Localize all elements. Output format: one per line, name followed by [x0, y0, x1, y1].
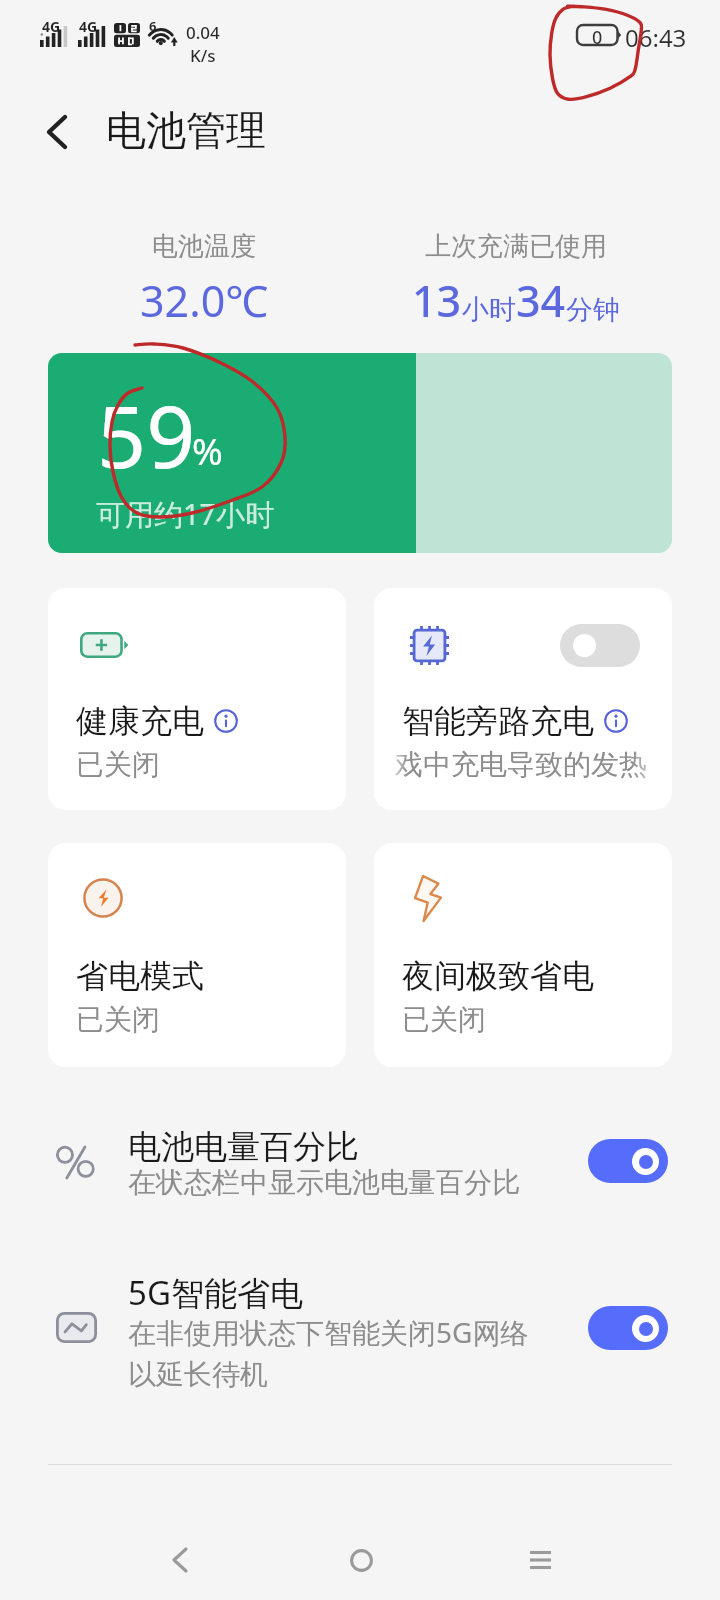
- staticText: 智能旁路充电: [402, 701, 594, 741]
- staticText: 在状态栏中显示电池电量百分比: [128, 1165, 520, 1200]
- staticText: 可用约17小时: [96, 494, 275, 534]
- staticText: 4G: [42, 17, 61, 36]
- staticText: 小时: [462, 293, 516, 327]
- staticText: 0.04: [186, 21, 220, 44]
- button[interactable]: Back: [135, 1515, 225, 1600]
- staticText: 夜间极致省电: [402, 956, 594, 996]
- staticText: 电池管理: [106, 105, 266, 155]
- staticText: 电池温度: [152, 230, 256, 263]
- staticText: 34: [516, 271, 566, 330]
- button[interactable]: Back: [22, 97, 92, 167]
- staticText: 0: [592, 25, 603, 45]
- button[interactable]: 健康充电: [48, 588, 346, 810]
- staticText: 健康充电: [76, 701, 204, 741]
- staticText: 6: [149, 17, 157, 35]
- button[interactable]: Toggle smart bypass charging: [374, 588, 672, 810]
- button[interactable]: 5G智能省电: [0, 1255, 720, 1415]
- button[interactable]: 省电模式: [48, 843, 346, 1067]
- staticText: 已关闭: [76, 1002, 160, 1037]
- button[interactable]: 电池电量百分比: [0, 1104, 720, 1219]
- button[interactable]: Toggle: [588, 1139, 668, 1183]
- staticText: K/s: [190, 44, 216, 67]
- staticText: 电池电量百分比: [128, 1126, 359, 1168]
- button[interactable]: Toggle smart bypass charging: [560, 624, 640, 667]
- staticText: 已关闭: [402, 1002, 486, 1037]
- staticText: 5G智能省电: [128, 1270, 303, 1315]
- other: Battery 0 percent: [577, 25, 621, 45]
- staticText: 省电模式: [76, 956, 204, 996]
- staticText: 13: [412, 271, 462, 330]
- staticText: 59: [97, 376, 196, 493]
- staticText: 分钟: [566, 293, 620, 327]
- staticText: 在非使用状态下智能关闭5G网络以延长待机: [128, 1313, 548, 1392]
- staticText: %: [192, 425, 223, 475]
- button[interactable]: 59: [48, 353, 672, 553]
- staticText: 4G: [79, 17, 98, 36]
- button[interactable]: Recent apps: [495, 1515, 585, 1600]
- button[interactable]: Toggle: [588, 1306, 668, 1350]
- staticText: 上次充满已使用: [425, 230, 607, 263]
- staticText: 32.0℃: [140, 271, 269, 330]
- staticText: 已关闭: [76, 747, 160, 782]
- staticText: 06:43: [625, 21, 687, 54]
- staticText: 戏中充电导致的发热: [395, 747, 647, 782]
- button[interactable]: 夜间极致省电: [374, 843, 672, 1067]
- button[interactable]: Home: [316, 1515, 406, 1600]
